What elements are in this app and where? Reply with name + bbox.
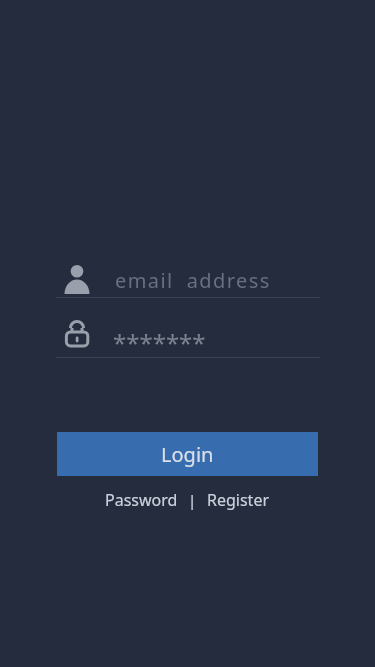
staticText: | — [188, 490, 197, 510]
staticText: ******* — [113, 326, 206, 359]
staticText: email address — [115, 267, 271, 294]
button[interactable]: Login — [57, 432, 318, 476]
staticText: Register — [207, 489, 270, 511]
button[interactable]: ******* — [56, 318, 320, 358]
button[interactable]: Register — [207, 489, 270, 511]
button[interactable]: Password — [105, 489, 178, 511]
staticText: Login — [161, 441, 214, 468]
staticText: Password — [105, 489, 178, 511]
button[interactable]: email address — [56, 258, 320, 298]
